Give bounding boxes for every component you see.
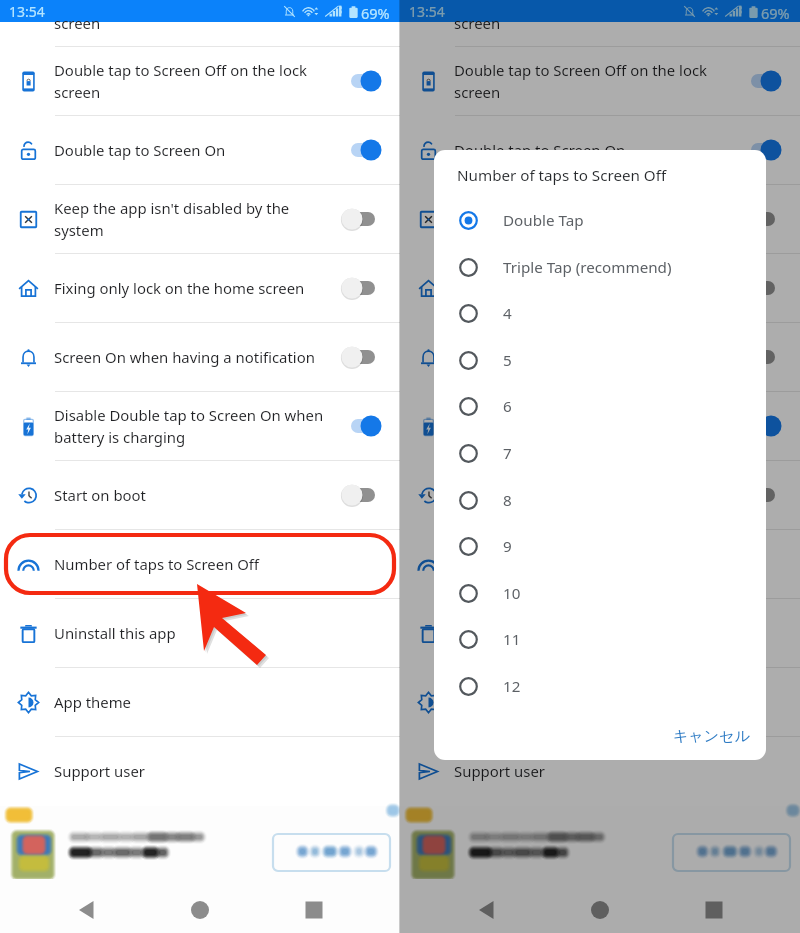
staticText: Number of taps to Screen Off	[54, 554, 354, 574]
staticText: 13:54	[9, 2, 45, 21]
button[interactable]: Double tap to Screen Off on the lock scr…	[0, 46, 400, 115]
button[interactable]: 7	[434, 430, 766, 476]
staticText: Support user	[454, 761, 754, 781]
staticText: 12	[503, 676, 521, 697]
staticText: Disable Double tap to Screen On when bat…	[454, 405, 754, 447]
staticText: Keep the app isn't disabled by the syste…	[454, 198, 754, 240]
staticText: 5	[503, 350, 512, 371]
staticText: Disable Double tap to Screen On when bat…	[54, 405, 354, 447]
button[interactable]: Disable Double tap to Screen On when bat…	[400, 391, 800, 460]
staticText: App theme	[454, 692, 754, 712]
button[interactable]: Start on boot	[400, 460, 800, 529]
staticText: 9	[503, 536, 512, 557]
other: Toggle	[740, 345, 784, 369]
staticText: App theme	[54, 692, 354, 712]
button[interactable]: Screen On when having a notification	[0, 322, 400, 391]
staticText: 13:54	[409, 2, 445, 21]
button[interactable]: Double tap to Screen On	[400, 115, 800, 184]
button[interactable]: 11	[434, 616, 766, 662]
other: Toggle	[340, 69, 384, 93]
other: Toggle	[340, 276, 384, 300]
other: Toggle	[740, 138, 784, 162]
other: Toggle	[740, 69, 784, 93]
other: Toggle	[340, 207, 384, 231]
button[interactable]: Support user	[400, 736, 800, 805]
button[interactable]: 9	[434, 523, 766, 569]
staticText: Number of taps to Screen Off	[457, 165, 667, 186]
other: Toggle	[740, 276, 784, 300]
staticText: 4	[503, 303, 512, 324]
button[interactable]: Double Tap	[434, 197, 766, 243]
button[interactable]: Keep the app isn't disabled by the syste…	[400, 184, 800, 253]
staticText: 69%	[761, 3, 790, 23]
button[interactable]: キャンセル	[667, 721, 756, 752]
button[interactable]: Fixing only lock on the home screen	[0, 253, 400, 322]
staticText: Start on boot	[54, 485, 354, 505]
other: Toggle	[740, 483, 784, 507]
staticText: Start on boot	[454, 485, 754, 505]
button[interactable]: 4	[434, 290, 766, 336]
button[interactable]: 6	[434, 383, 766, 429]
staticText: 11	[503, 629, 521, 650]
staticText: 6	[503, 396, 512, 417]
button[interactable]: 12	[434, 663, 766, 709]
button[interactable]: Start on boot	[0, 460, 400, 529]
staticText: Double tap to Screen Off on the lock scr…	[454, 60, 754, 102]
staticText: キャンセル	[673, 727, 750, 746]
staticText: Keep the app isn't disabled by the syste…	[54, 198, 354, 240]
staticText: screen	[454, 13, 501, 33]
staticText: Number of taps to Screen Off	[454, 554, 754, 574]
button[interactable]: App theme	[400, 667, 800, 736]
button[interactable]: Fixing only lock on the home screen	[400, 253, 800, 322]
button[interactable]: Support user	[0, 736, 400, 805]
button[interactable]: Back	[470, 879, 800, 933]
button[interactable]: Double tap to Screen Off on the lock scr…	[400, 46, 800, 115]
button[interactable]: Back	[70, 879, 470, 933]
button[interactable]: Double tap to Screen On	[0, 115, 400, 184]
other: Toggle	[340, 414, 384, 438]
button[interactable]: Triple Tap (recommend)	[434, 244, 766, 290]
staticText: Double tap to Screen Off on the lock scr…	[54, 60, 354, 102]
staticText: Uninstall this app	[54, 623, 354, 643]
button[interactable]: Disable Double tap to Screen On when bat…	[0, 391, 400, 460]
staticText: Screen On when having a notification	[54, 347, 354, 367]
staticText: Support user	[54, 761, 354, 781]
button[interactable]: Number of taps to Screen Off	[0, 529, 400, 598]
staticText: 10	[503, 583, 521, 604]
staticText: Triple Tap (recommend)	[503, 257, 672, 278]
staticText: screen	[54, 13, 101, 33]
other: Toggle	[340, 345, 384, 369]
staticText: Uninstall this app	[454, 623, 754, 643]
button[interactable]: 8	[434, 477, 766, 523]
staticText: Screen On when having a notification	[454, 347, 754, 367]
button[interactable]: Keep the app isn't disabled by the syste…	[0, 184, 400, 253]
staticText: Fixing only lock on the home screen	[54, 278, 354, 298]
staticText: 8	[503, 490, 512, 511]
button[interactable]: Uninstall this app	[400, 598, 800, 667]
button[interactable]: 10	[434, 570, 766, 616]
staticText: 7	[503, 443, 512, 464]
button[interactable]: Uninstall this app	[0, 598, 400, 667]
button[interactable]: Number of taps to Screen Off	[400, 529, 800, 598]
other: Toggle	[740, 207, 784, 231]
other: Toggle	[340, 138, 384, 162]
button[interactable]: 5	[434, 337, 766, 383]
other: Toggle	[340, 483, 384, 507]
button[interactable]: App theme	[0, 667, 400, 736]
staticText: Double tap to Screen On	[454, 140, 754, 160]
staticText: 69%	[361, 3, 390, 23]
staticText: Double tap to Screen On	[54, 140, 354, 160]
staticText: Double Tap	[503, 210, 584, 231]
other: Toggle	[740, 414, 784, 438]
button[interactable]: Screen On when having a notification	[400, 322, 800, 391]
